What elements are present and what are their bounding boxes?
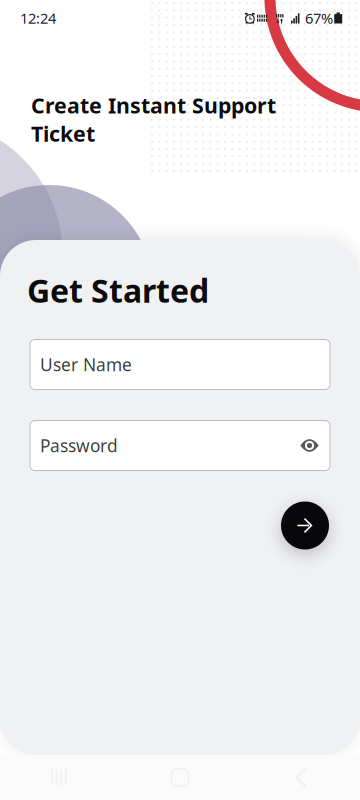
- button[interactable]: User Name: [30, 339, 330, 389]
- button[interactable]: Continue: [281, 501, 329, 549]
- button[interactable]: Password: [30, 420, 330, 470]
- staticText: Get Started: [27, 269, 209, 311]
- staticText: 67%: [305, 8, 333, 28]
- staticText: Ticket: [31, 119, 95, 148]
- staticText: User Name: [40, 353, 132, 376]
- staticText: 12:24: [20, 8, 56, 28]
- staticText: Create Instant Support: [31, 91, 276, 119]
- staticText: Password: [40, 434, 118, 457]
